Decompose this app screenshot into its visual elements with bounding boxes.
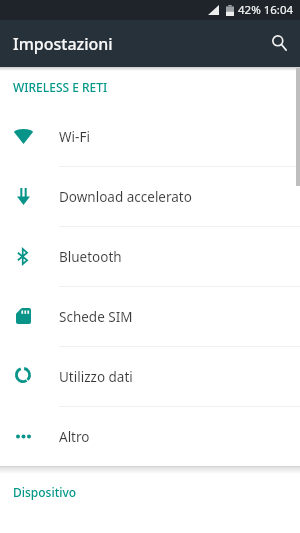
staticText: WIRELESS E RETI: [13, 79, 108, 95]
staticText: Dispositivo: [13, 484, 77, 500]
button[interactable]: Bluetooth: [0, 227, 300, 286]
button[interactable]: Utilizzo dati: [0, 347, 300, 406]
staticText: Wi-Fi: [59, 128, 90, 146]
button[interactable]: Schede SIM: [0, 287, 300, 346]
button[interactable]: Download accelerato: [0, 167, 300, 226]
staticText: Utilizzo dati: [59, 368, 133, 386]
staticText: Schede SIM: [59, 308, 133, 326]
button[interactable]: Search: [261, 25, 297, 61]
staticText: Download accelerato: [59, 188, 192, 206]
button[interactable]: Wi-Fi: [0, 107, 300, 166]
staticText: Impostazioni: [13, 33, 113, 55]
staticText: Altro: [59, 428, 90, 446]
button[interactable]: Altro: [0, 407, 300, 466]
staticText: Bluetooth: [59, 248, 122, 266]
staticText: 42% 16:04: [238, 2, 294, 18]
